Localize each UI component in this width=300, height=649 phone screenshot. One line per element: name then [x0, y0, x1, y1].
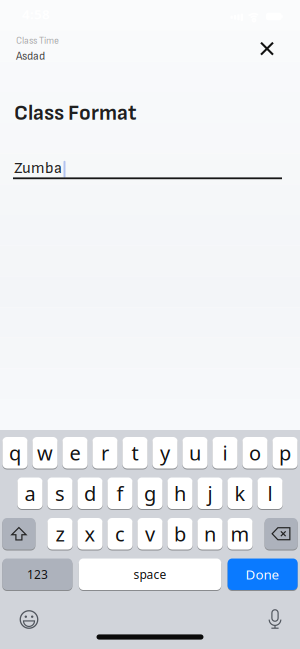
- staticText: Done: [246, 565, 280, 583]
- staticText: w: [37, 439, 53, 466]
- button[interactable]: l: [257, 477, 283, 509]
- staticText: j: [207, 480, 212, 507]
- button[interactable]: [2, 518, 35, 549]
- staticText: p: [279, 439, 291, 466]
- staticText: k: [234, 480, 245, 507]
- staticText: d: [84, 480, 96, 507]
- button[interactable]: d: [77, 477, 103, 509]
- staticText: v: [145, 520, 155, 547]
- button[interactable]: q: [2, 437, 28, 468]
- staticText: 123: [27, 566, 48, 582]
- staticText: o: [249, 439, 261, 466]
- button[interactable]: u: [182, 437, 208, 468]
- staticText: Class Time: [16, 35, 59, 46]
- button[interactable]: e: [62, 437, 88, 468]
- staticText: Zumba: [14, 159, 62, 178]
- staticText: a: [24, 480, 35, 507]
- button[interactable]: w: [32, 437, 58, 468]
- staticText: i: [222, 439, 227, 466]
- staticText: s: [55, 480, 65, 507]
- button[interactable]: p: [272, 437, 298, 468]
- staticText: f: [116, 480, 123, 507]
- button[interactable]: space: [79, 558, 221, 590]
- button[interactable]: j: [197, 477, 223, 509]
- staticText: l: [267, 480, 272, 507]
- button[interactable]: b: [167, 518, 193, 549]
- staticText: m: [230, 520, 249, 547]
- staticText: h: [174, 480, 186, 507]
- button[interactable]: c: [107, 518, 133, 549]
- button[interactable]: Done: [228, 558, 298, 590]
- button[interactable]: m: [227, 518, 253, 549]
- button[interactable]: k: [227, 477, 253, 509]
- button[interactable]: [265, 518, 298, 549]
- staticText: Class Format: [14, 100, 137, 126]
- button[interactable]: s: [47, 477, 73, 509]
- staticText: r: [101, 439, 109, 466]
- button[interactable]: t: [122, 437, 148, 468]
- button[interactable]: z: [47, 518, 73, 549]
- staticText: c: [115, 520, 125, 547]
- button[interactable]: g: [137, 477, 163, 509]
- staticText: q: [9, 439, 21, 466]
- button[interactable]: [260, 42, 300, 56]
- button[interactable]: h: [167, 477, 193, 509]
- button[interactable]: n: [197, 518, 223, 549]
- staticText: Asdad: [16, 49, 45, 63]
- staticText: b: [174, 520, 186, 547]
- button[interactable]: [0, 610, 38, 628]
- staticText: y: [160, 439, 170, 466]
- button[interactable]: [268, 610, 300, 629]
- staticText: space: [133, 566, 166, 582]
- button[interactable]: 123: [2, 558, 72, 590]
- button[interactable]: r: [92, 437, 118, 468]
- button[interactable]: y: [152, 437, 178, 468]
- staticText: x: [84, 520, 95, 547]
- button[interactable]: a: [17, 477, 43, 509]
- button[interactable]: i: [212, 437, 238, 468]
- button[interactable]: Zumba: [0, 159, 282, 180]
- button[interactable]: o: [242, 437, 268, 468]
- staticText: u: [189, 439, 201, 466]
- button[interactable]: f: [107, 477, 133, 509]
- button[interactable]: v: [137, 518, 163, 549]
- button[interactable]: x: [77, 518, 103, 549]
- staticText: t: [131, 439, 138, 466]
- staticText: g: [144, 480, 156, 507]
- staticText: n: [204, 520, 216, 547]
- staticText: z: [55, 520, 64, 547]
- staticText: e: [69, 439, 80, 466]
